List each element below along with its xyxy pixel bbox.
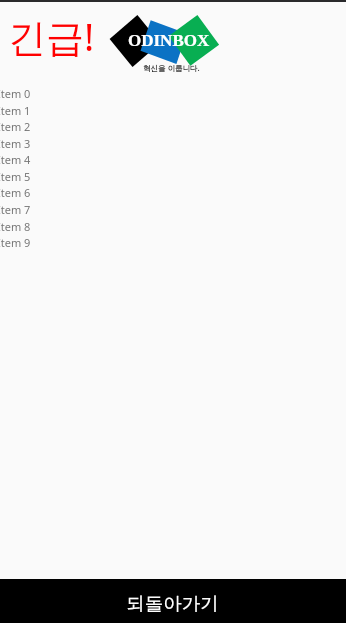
button[interactable]: 되돌아가기 xyxy=(0,579,346,623)
staticText: Item 7 xyxy=(0,202,31,217)
button[interactable]: Item 9 xyxy=(0,234,346,250)
staticText: 혁신을 이룹니다. xyxy=(143,63,200,73)
button[interactable]: Item 3 xyxy=(0,135,346,151)
staticText: Item 3 xyxy=(0,136,31,151)
staticText: Item 9 xyxy=(0,235,31,250)
button[interactable]: Item 6 xyxy=(0,184,346,200)
staticText: Item 6 xyxy=(0,185,31,200)
staticText: Item 0 xyxy=(0,86,31,101)
staticText: Item 5 xyxy=(0,169,31,184)
staticText: Item 8 xyxy=(0,219,31,234)
button[interactable]: Item 0 xyxy=(0,85,346,101)
button[interactable]: Item 1 xyxy=(0,102,346,118)
button[interactable]: Item 2 xyxy=(0,118,346,134)
staticText: Item 1 xyxy=(0,103,31,118)
button[interactable]: Item 8 xyxy=(0,218,346,234)
staticText: 긴급! xyxy=(8,10,95,62)
staticText: 되돌아가기 xyxy=(126,592,219,615)
staticText: Item 2 xyxy=(0,119,31,134)
staticText: ODINBOX xyxy=(128,31,210,50)
button[interactable]: Item 7 xyxy=(0,201,346,217)
button[interactable]: Item 5 xyxy=(0,168,346,184)
button[interactable]: Item 4 xyxy=(0,151,346,167)
staticText: Item 4 xyxy=(0,152,31,167)
